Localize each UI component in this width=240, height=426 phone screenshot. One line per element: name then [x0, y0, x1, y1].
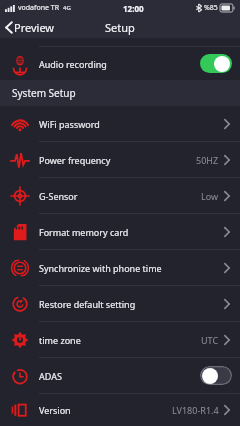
staticText: 12:00: [123, 3, 144, 14]
button[interactable]: Synchronize with phone time: [0, 250, 240, 285]
staticText: Audio recording: [39, 58, 200, 70]
staticText: 50HZ: [196, 154, 219, 166]
staticText: %85: [204, 3, 218, 13]
staticText: Format memory card: [39, 226, 222, 238]
button[interactable]: Toggle: [200, 48, 232, 57]
button[interactable]: Power frequency: [0, 142, 240, 177]
button[interactable]: Preview: [0, 16, 61, 38]
staticText: Version: [39, 404, 172, 416]
staticText: Low: [201, 190, 219, 202]
button[interactable]: Toggle off: [200, 366, 232, 385]
button[interactable]: Format memory card: [0, 214, 240, 249]
staticText: G-Sensor: [39, 190, 201, 202]
button[interactable]: Version: [0, 394, 240, 426]
button[interactable]: Audio recording: [0, 47, 240, 80]
staticText: Preview: [14, 20, 55, 35]
staticText: Restore default setting: [39, 298, 222, 310]
staticText: Synchronize with phone time: [39, 262, 222, 274]
staticText: ADAS: [39, 370, 200, 382]
button[interactable]: ADAS: [0, 358, 240, 393]
staticText: vodafone TR: [18, 3, 60, 13]
staticText: System Setup: [12, 86, 76, 100]
button[interactable]: Toggle on: [200, 54, 232, 73]
button[interactable]: G-Sensor: [0, 178, 240, 213]
staticText: LV180-R1.4: [172, 404, 219, 416]
staticText: Setup: [105, 20, 135, 35]
button[interactable]: WiFi password: [0, 106, 240, 141]
button[interactable]: time zone: [0, 322, 240, 357]
staticText: UTC: [201, 334, 219, 346]
button[interactable]: Restore default setting: [0, 286, 240, 321]
staticText: WiFi password: [39, 118, 222, 130]
staticText: 4G: [63, 4, 71, 12]
staticText: Power frequency: [39, 154, 196, 166]
staticText: time zone: [39, 334, 201, 346]
